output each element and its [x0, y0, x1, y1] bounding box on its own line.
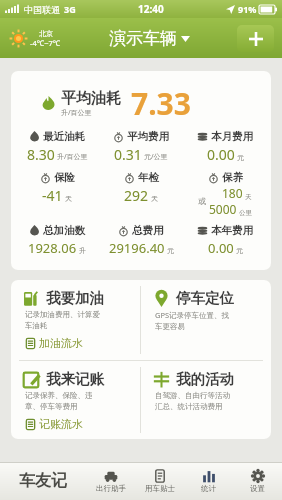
staticText: 我的活动: [176, 370, 234, 388]
staticText: GPS记录停车位置、找 车更容易: [155, 310, 230, 331]
staticText: 8.30: [27, 145, 55, 164]
staticText: 停车定位: [176, 289, 234, 307]
button[interactable]: 记账流水: [23, 416, 86, 432]
staticText: 平均费用: [127, 130, 169, 143]
staticText: 天: [151, 194, 158, 203]
staticText: 0.00: [208, 239, 234, 257]
staticText: 3G: [64, 3, 76, 15]
staticText: 本年费用: [211, 224, 253, 237]
staticText: 29196.40: [109, 239, 165, 257]
staticText: 5000: [209, 201, 237, 217]
staticText: 总费用: [132, 224, 164, 237]
button[interactable]: 平均费用: [99, 130, 183, 164]
staticText: 保养: [222, 171, 243, 184]
button[interactable]: Add: [237, 25, 274, 52]
staticText: 出行助手: [96, 484, 126, 493]
button[interactable]: 北京: [8, 27, 63, 50]
staticText: 平均油耗: [61, 89, 121, 108]
staticText: 升: [79, 246, 86, 255]
staticText: 12:40: [138, 2, 164, 16]
staticText: 元: [237, 153, 244, 162]
button[interactable]: 演示车辆: [103, 24, 196, 53]
staticText: 我要加油: [46, 289, 104, 307]
staticText: 0.00: [207, 145, 235, 164]
staticText: 292: [124, 186, 149, 205]
staticText: 北京: [39, 29, 53, 38]
button[interactable]: 我要加油: [11, 280, 140, 360]
button[interactable]: 年检: [99, 171, 183, 205]
staticText: 记账流水: [39, 417, 83, 431]
staticText: 记录加油费用、计算爱 车油耗: [25, 310, 100, 330]
button[interactable]: 总费用: [99, 224, 183, 257]
staticText: 升/百公里: [57, 152, 88, 162]
staticText: 升/百公里: [61, 108, 92, 118]
staticText: 天: [65, 194, 72, 203]
staticText: 本月费用: [211, 130, 253, 143]
staticText: 车友记: [19, 471, 67, 491]
staticText: 自驾游、自由行等活动 汇总、统计活动费用: [155, 391, 230, 411]
staticText: 7.33: [131, 83, 191, 124]
staticText: 1928.06: [28, 239, 77, 257]
staticText: 设置: [250, 484, 265, 493]
staticText: 我来记账: [46, 370, 104, 388]
staticText: -4℃~7℃: [30, 38, 61, 48]
button[interactable]: 本月费用: [183, 130, 267, 164]
staticText: 元: [236, 246, 243, 255]
staticText: 元/公里: [144, 152, 168, 162]
button[interactable]: 我的活动: [141, 361, 271, 439]
staticText: 天: [245, 193, 252, 201]
button[interactable]: 本年费用: [183, 224, 267, 257]
staticText: 演示车辆: [109, 28, 177, 49]
staticText: 年检: [138, 171, 159, 184]
staticText: 保险: [54, 171, 75, 184]
button[interactable]: 保养: [183, 171, 267, 217]
staticText: 或: [198, 196, 206, 206]
button[interactable]: 出行助手: [86, 462, 135, 500]
button[interactable]: 停车定位: [141, 280, 271, 360]
staticText: 91%: [238, 3, 257, 15]
button[interactable]: 保险: [15, 171, 99, 205]
button[interactable]: 我来记账: [11, 361, 140, 439]
button[interactable]: 用车贴士: [135, 462, 184, 500]
staticText: 用车贴士: [145, 484, 175, 493]
staticText: 记录保养、保险、违 章、停车等费用: [25, 391, 93, 411]
staticText: 0.31: [114, 145, 142, 164]
button[interactable]: 加油流水: [23, 335, 86, 351]
staticText: 公里: [239, 209, 252, 217]
button[interactable]: 平均油耗: [11, 80, 271, 130]
staticText: -41: [42, 186, 63, 205]
staticText: 中国联通: [24, 4, 60, 15]
staticText: 总加油数: [43, 224, 85, 237]
staticText: 统计: [201, 484, 216, 493]
button[interactable]: 总加油数: [15, 224, 99, 257]
staticText: 180: [222, 185, 243, 201]
button[interactable]: 最近油耗: [15, 130, 99, 164]
button[interactable]: 统计: [184, 462, 233, 500]
staticText: 元: [167, 246, 174, 255]
staticText: 加油流水: [39, 336, 83, 350]
button[interactable]: 车友记: [0, 462, 86, 500]
button[interactable]: 设置: [233, 462, 282, 500]
staticText: 最近油耗: [43, 130, 85, 143]
